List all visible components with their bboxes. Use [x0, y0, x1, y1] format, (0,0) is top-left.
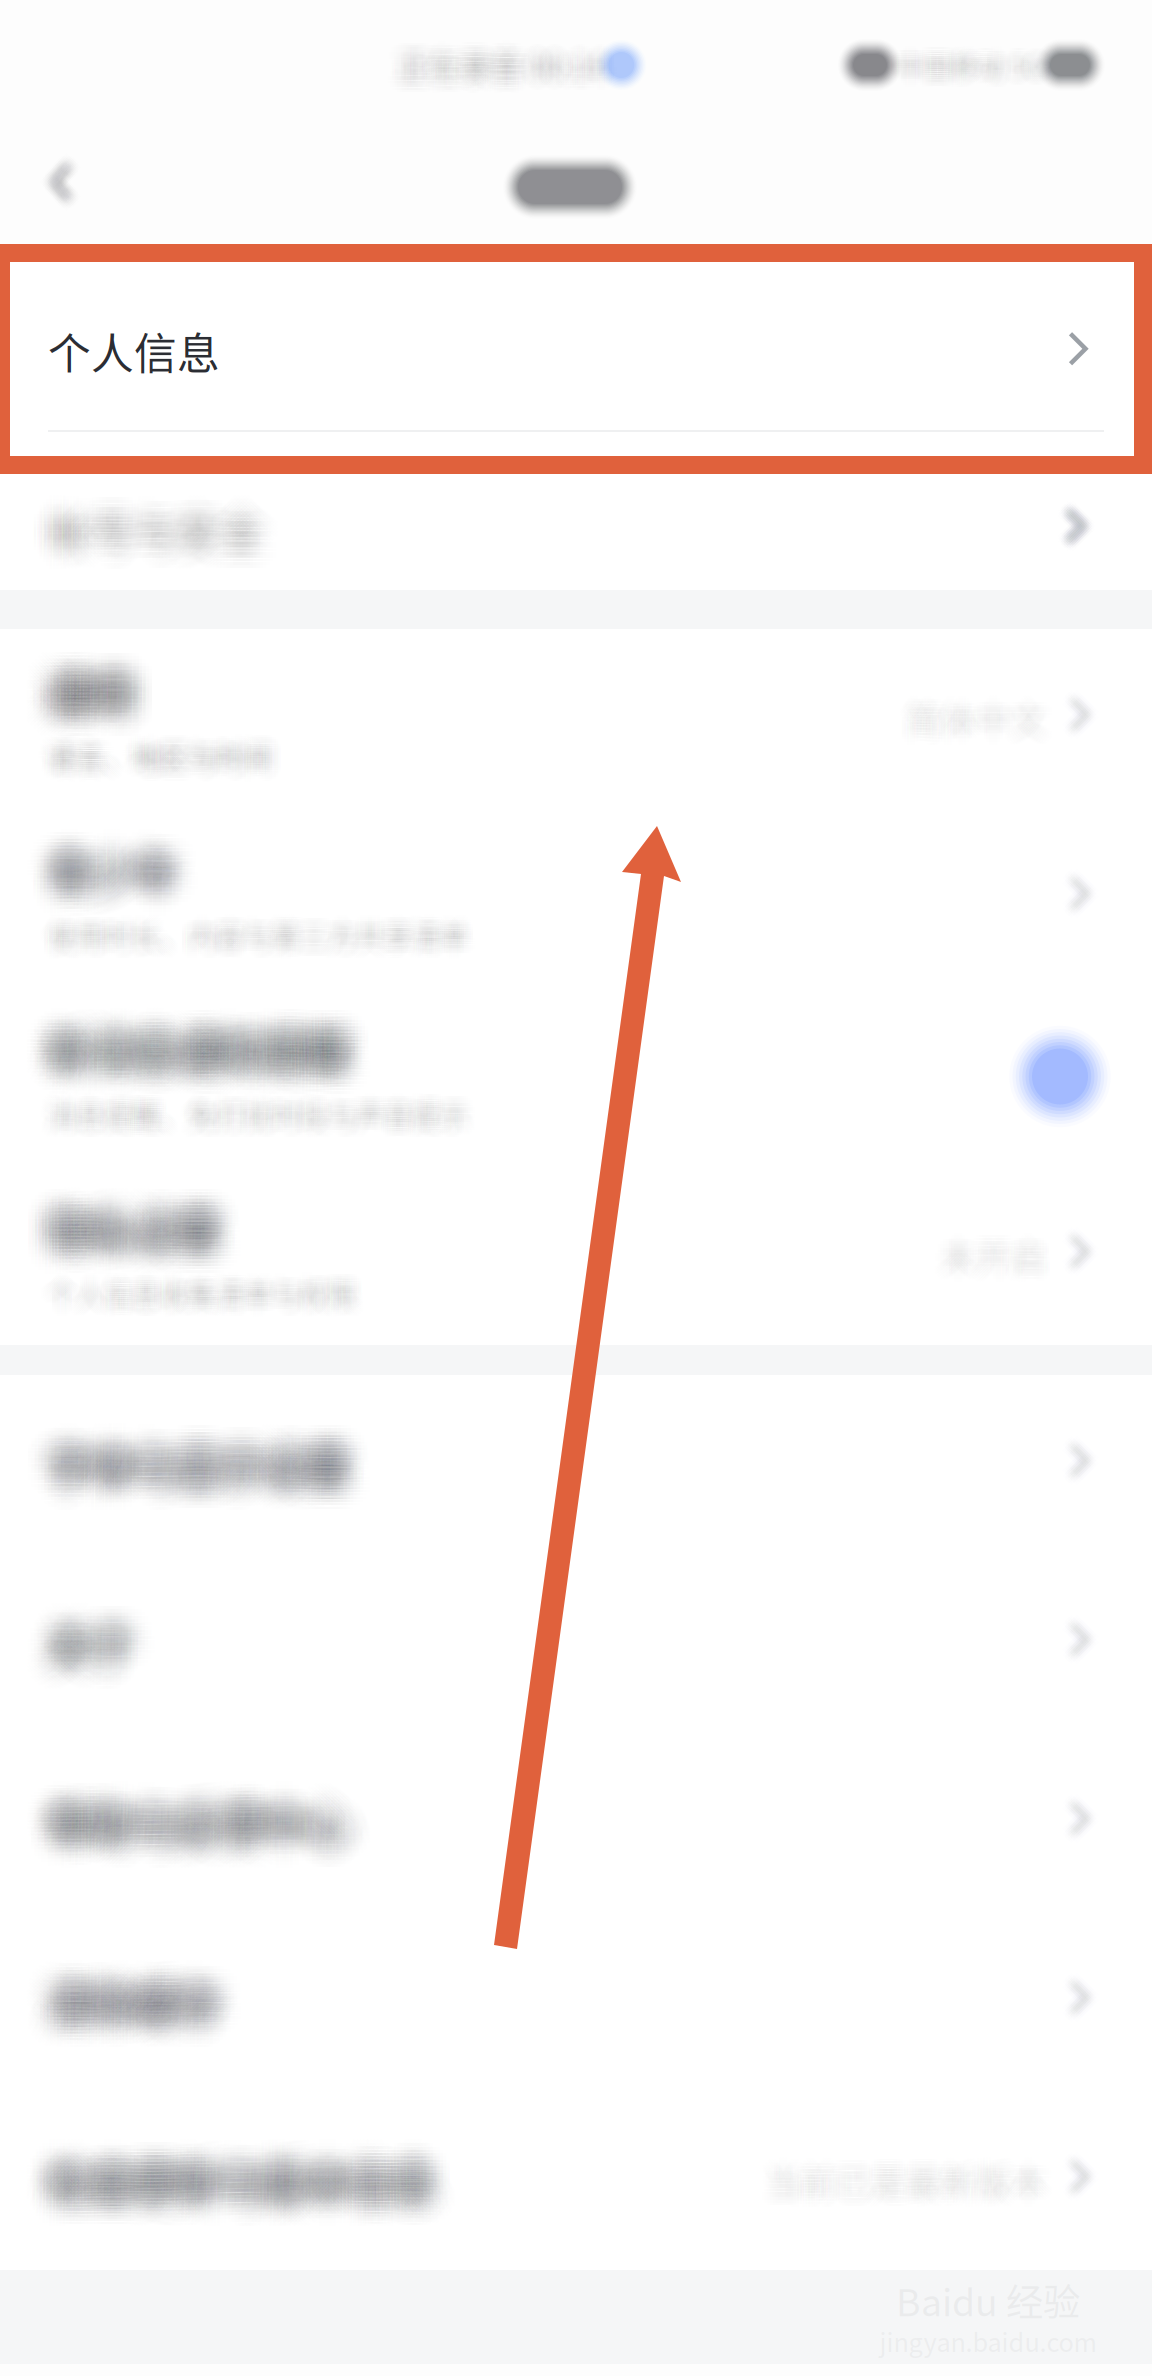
- staticText: 个人信息收集清单与权限: [35, 1258, 343, 1298]
- staticText: 个人信息收集清单与权限: [28, 1284, 336, 1324]
- staticText: 帮助与反馈中心: [58, 1772, 359, 1833]
- staticText: 帮助与反馈中心: [75, 1768, 376, 1830]
- staticText: 青少年: [78, 816, 207, 878]
- staticText: 帐号与安全: [51, 469, 266, 531]
- staticText: 关于: [68, 1639, 154, 1701]
- staticText: 关于: [28, 1643, 114, 1704]
- staticText: 字体与显示设置: [45, 1414, 346, 1475]
- staticText: 清除缓存: [28, 1954, 200, 2016]
- staticText: 青少年: [21, 866, 150, 928]
- staticText: 新消息通知提醒: [71, 1012, 372, 1073]
- staticText: 消息提醒、免打扰时段与声音提示: [57, 1081, 477, 1121]
- staticText: 正在录音 00:14: [408, 33, 616, 78]
- staticText: 语言、地区与时间: [35, 730, 259, 770]
- staticText: 青少年: [45, 853, 174, 914]
- button[interactable]: 个人信息: [0, 244, 1152, 470]
- staticText: 使用时长、内容与第三方共享清单: [57, 898, 477, 938]
- staticText: 通用: [41, 657, 127, 719]
- staticText: 正在录音 00:14: [412, 24, 620, 68]
- staticText: 清除缓存: [78, 1994, 250, 2056]
- staticText: 检查更新与版本信息: [75, 2163, 462, 2225]
- staticText: 检查更新与版本信息: [78, 2166, 465, 2228]
- staticText: 未开启: [936, 1211, 1041, 1262]
- staticText: 未开启: [965, 1238, 1070, 1289]
- staticText: 隐私设置: [41, 1197, 213, 1259]
- staticText: 新消息通知提醒: [48, 988, 349, 1050]
- staticText: 消息提醒、免打扰时段与声音提示: [48, 1103, 468, 1143]
- staticText: 隐私设置: [51, 1227, 223, 1289]
- staticText: 帐号与安全: [65, 526, 280, 587]
- staticText: 字体与显示设置: [51, 1457, 352, 1519]
- staticText: 关于: [18, 1589, 104, 1651]
- staticText: 通用: [48, 660, 134, 722]
- staticText: 帮助与反馈中心: [48, 1798, 349, 1860]
- staticText: 检查更新与版本信息: [45, 2120, 432, 2181]
- staticText: 使用时长、内容与第三方共享清单: [35, 915, 455, 956]
- staticText: 帮助与反馈中心: [68, 1822, 369, 1883]
- button[interactable]: 关于: [0, 1554, 1152, 1733]
- staticText: 正在录音 00:14: [386, 40, 594, 85]
- button[interactable]: 检查更新与版本信息: [0, 2091, 1152, 2270]
- staticText: 字体与显示设置: [28, 1424, 329, 1485]
- staticText: 清除缓存: [45, 1957, 217, 2019]
- staticText: 中国移动 5G: [893, 44, 1040, 82]
- staticText: 新消息通知提醒: [45, 1032, 346, 1093]
- staticText: 新消息通知提醒: [51, 1035, 352, 1097]
- staticText: 字体与显示设置: [68, 1434, 369, 1495]
- staticText: 语言、地区与时间: [59, 727, 283, 768]
- button[interactable]: 帐号与安全: [0, 470, 1152, 590]
- staticText: 消息提醒、免打扰时段与声音提示: [30, 1092, 450, 1132]
- button[interactable]: 青少年: [0, 808, 1152, 987]
- staticText: 使用时长、内容与第三方共享清单: [44, 895, 464, 936]
- staticText: 中国移动 5G: [909, 62, 1056, 101]
- staticText: 当前已是最新版本: [766, 2150, 1046, 2200]
- staticText: 检查更新与版本信息: [55, 2176, 442, 2238]
- staticText: 消息提醒、免打扰时段与声音提示: [37, 1112, 457, 1152]
- staticText: 通用: [65, 670, 151, 732]
- staticText: 字体与显示设置: [61, 1450, 362, 1512]
- staticText: 帮助与反馈中心: [61, 1782, 362, 1843]
- staticText: 新消息通知提醒: [25, 1042, 326, 1103]
- staticText: 当前已是最新版本: [790, 2169, 1070, 2219]
- staticText: 正在录音 00:14: [376, 36, 584, 80]
- staticText: 检查更新与版本信息: [51, 2160, 438, 2221]
- staticText: 消息提醒、免打扰时段与声音提示: [28, 1114, 448, 1154]
- button[interactable]: 字体与显示设置: [0, 1375, 1152, 1554]
- staticText: 帐号与安全: [28, 469, 243, 531]
- staticText: 正在录音 00:14: [376, 64, 584, 109]
- button[interactable]: 通用: [0, 629, 1152, 808]
- staticText: 简体中文: [925, 677, 1065, 727]
- button[interactable]: 隐私设置: [0, 1166, 1152, 1345]
- staticText: 语言、地区与时间: [63, 730, 287, 770]
- staticText: 中国移动 5G: [893, 31, 1040, 70]
- button[interactable]: 新消息通知提醒: [0, 987, 1152, 1166]
- staticText: 帮助与反馈中心: [65, 1812, 366, 1873]
- staticText: 清除缓存: [21, 1994, 193, 2056]
- staticText: 正在录音 00:14: [400, 24, 608, 68]
- staticText: 中国移动 5G: [914, 44, 1061, 82]
- staticText: 新消息通知提醒: [38, 1015, 339, 1077]
- staticText: 当前已是最新版本: [779, 2158, 1059, 2208]
- staticText: 当前已是最新版本: [774, 2131, 1054, 2181]
- staticText: 使用时长、内容与第三方共享清单: [39, 933, 459, 973]
- staticText: 隐私设置: [35, 1184, 207, 1246]
- staticText: 关于: [75, 1616, 161, 1678]
- staticText: 检查更新与版本信息: [35, 2156, 422, 2218]
- button[interactable]: 帮助与反馈中心: [0, 1733, 1152, 1912]
- staticText: 新消息通知提醒: [41, 1005, 342, 1067]
- staticText: 字体与显示设置: [51, 1417, 352, 1479]
- button[interactable]: 清除缓存: [0, 1912, 1152, 2091]
- staticText: 关于: [68, 1636, 154, 1698]
- staticText: 使用时长、内容与第三方共享清单: [63, 933, 483, 973]
- staticText: 语言、地区与时间: [30, 743, 254, 783]
- staticText: 正在录音 00:14: [410, 28, 618, 73]
- staticText: 清除缓存: [25, 1971, 197, 2032]
- staticText: 语言、地区与时间: [55, 754, 279, 794]
- staticText: 隐私设置: [28, 1191, 200, 1252]
- staticText: 语言、地区与时间: [39, 723, 263, 763]
- staticText: 使用时长、内容与第三方共享清单: [55, 915, 475, 956]
- staticText: 新消息通知提醒: [68, 1048, 369, 1110]
- staticText: 个人信息收集清单与权限: [35, 1260, 343, 1300]
- staticText: 帐号与安全: [51, 476, 266, 538]
- button[interactable]: Back: [0, 130, 132, 244]
